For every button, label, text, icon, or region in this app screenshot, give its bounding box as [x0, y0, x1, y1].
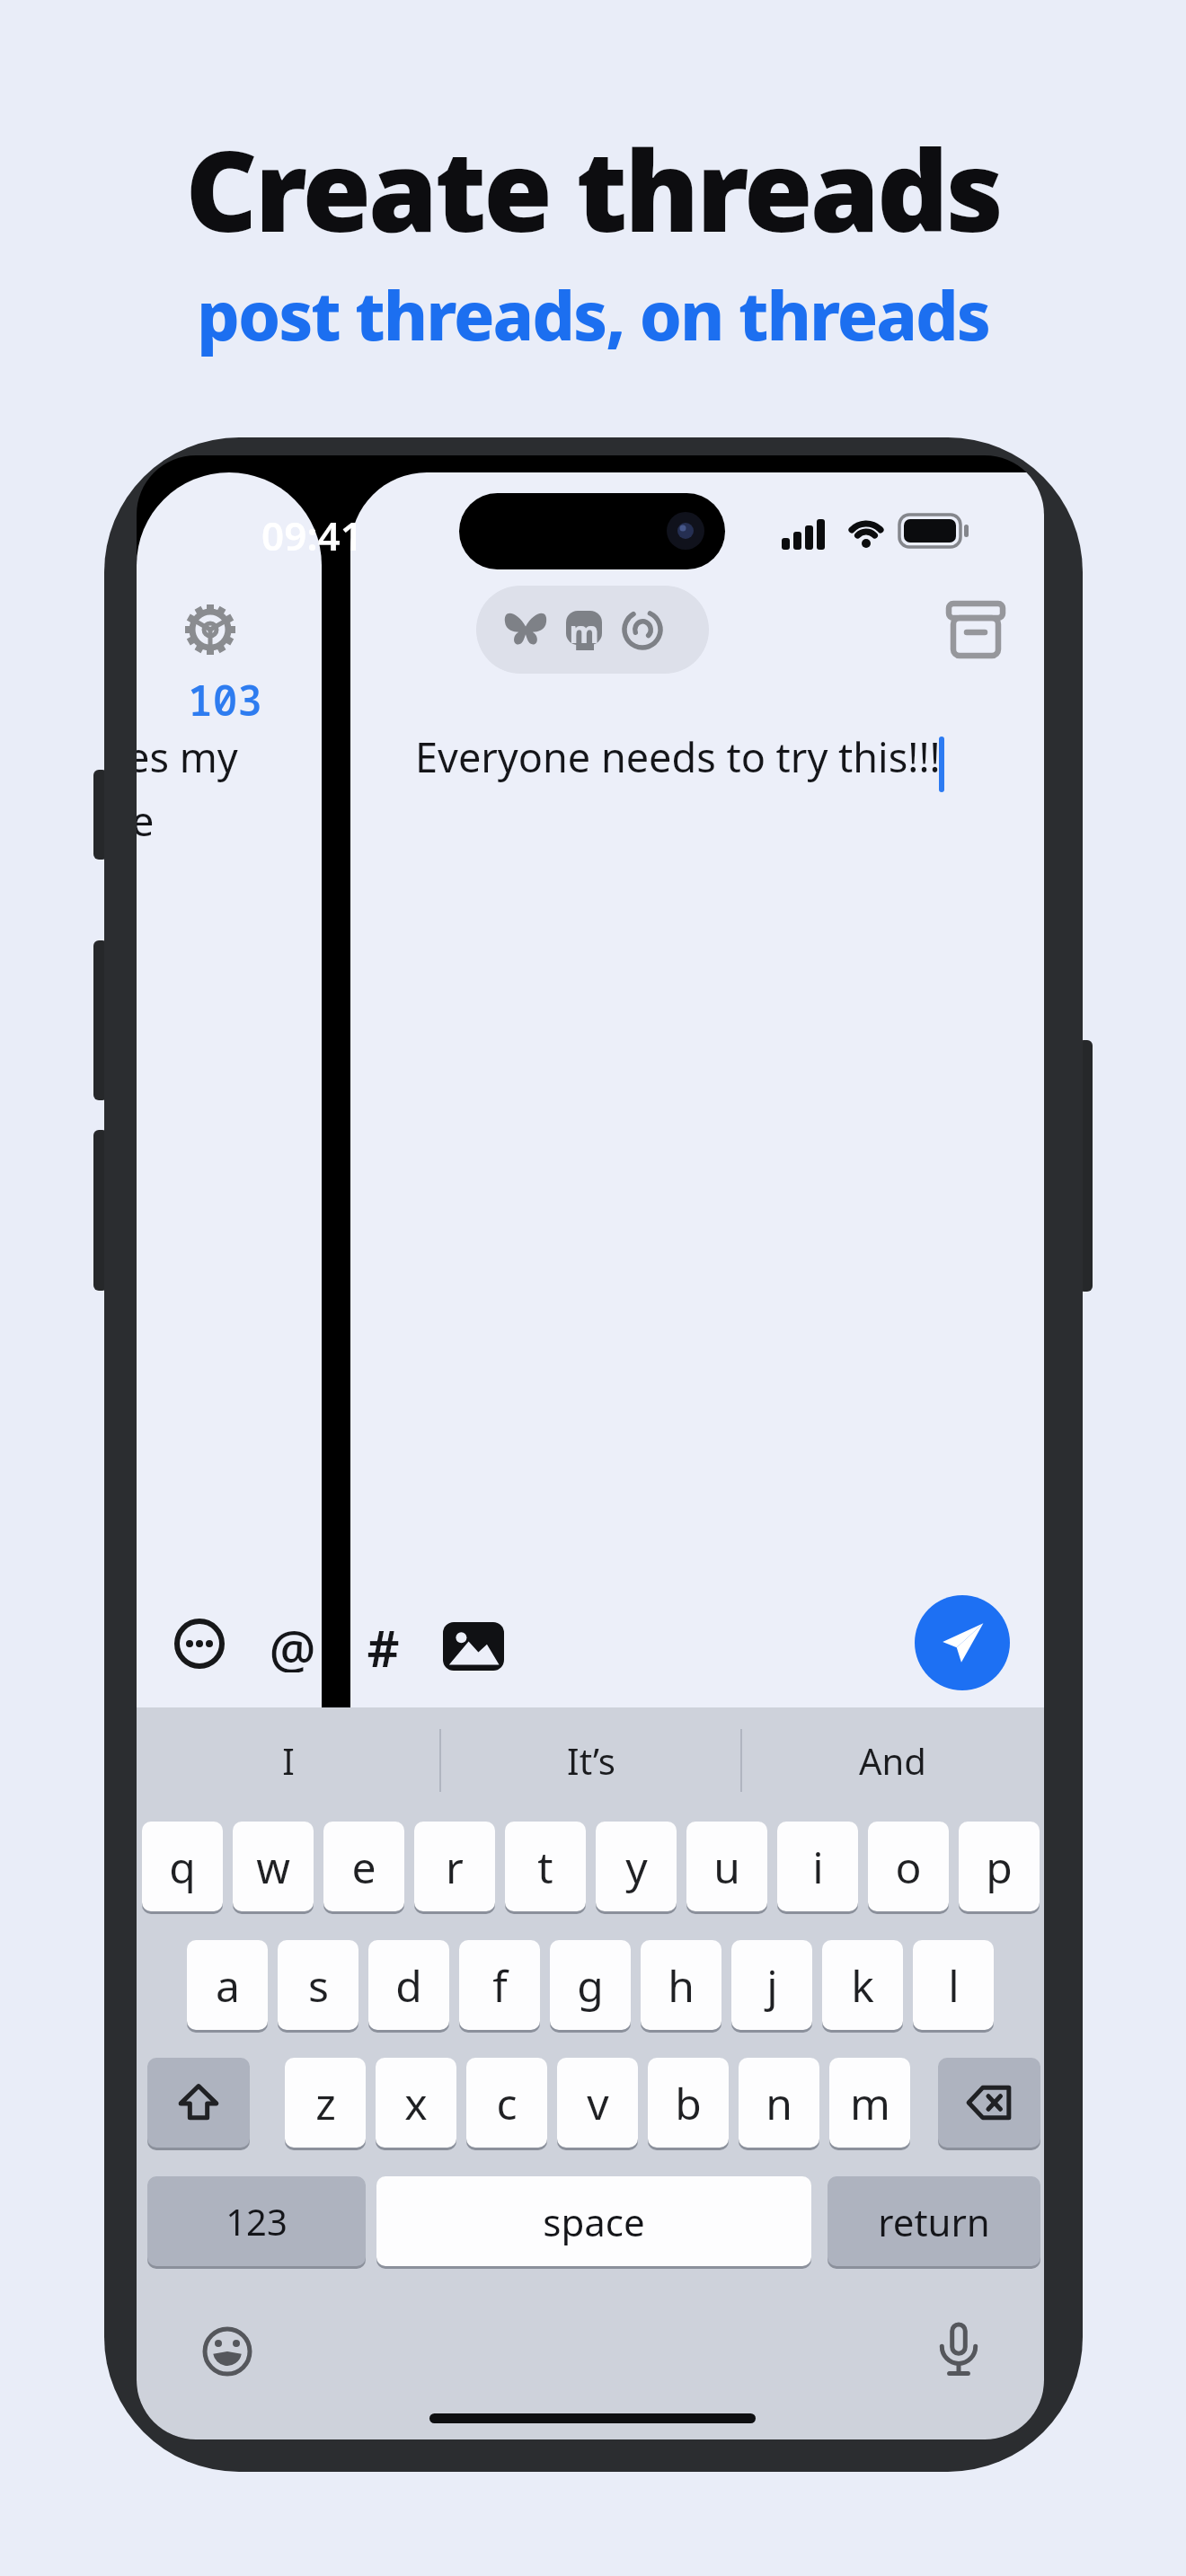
button[interactable]: It’s — [440, 1727, 741, 1794]
button[interactable]: f — [459, 1940, 540, 2030]
staticText: w — [256, 1838, 290, 1896]
staticText: q — [169, 1838, 196, 1896]
button[interactable] — [147, 2058, 250, 2148]
staticText: space — [543, 2196, 645, 2247]
button[interactable]: x — [376, 2058, 456, 2148]
button[interactable]: v — [557, 2058, 638, 2148]
staticText: r — [446, 1838, 464, 1896]
button[interactable] — [622, 609, 663, 650]
staticText: es my — [137, 729, 238, 784]
button[interactable] — [174, 1619, 225, 1669]
staticText: f — [492, 1956, 508, 2015]
button[interactable] — [938, 2058, 1040, 2148]
button[interactable]: I — [137, 1727, 440, 1794]
staticText: p — [986, 1838, 1013, 1896]
staticText: 123 — [226, 2197, 288, 2245]
button[interactable] — [935, 2325, 982, 2380]
button[interactable]: space — [376, 2176, 811, 2266]
staticText: m — [850, 2074, 890, 2132]
staticText: j — [766, 1956, 778, 2015]
button[interactable] — [443, 1622, 504, 1671]
button[interactable]: u — [686, 1822, 767, 1911]
button[interactable]: n — [739, 2058, 819, 2148]
staticText: post threads, on threads — [197, 269, 989, 358]
staticText: t — [537, 1838, 553, 1896]
button[interactable]: # — [356, 1613, 410, 1672]
button[interactable]: And — [741, 1727, 1044, 1794]
staticText: And — [859, 1736, 926, 1785]
button[interactable]: o — [868, 1822, 949, 1911]
staticText: 103 — [188, 672, 262, 720]
button[interactable]: t — [505, 1822, 586, 1911]
staticText: @ — [269, 1613, 316, 1672]
button[interactable]: g — [550, 1940, 631, 2030]
staticText: l — [948, 1956, 960, 2015]
button[interactable]: p — [959, 1822, 1040, 1911]
button[interactable]: 123 — [147, 2176, 366, 2266]
button[interactable]: k — [822, 1940, 903, 2030]
staticText: # — [367, 1613, 400, 1672]
button[interactable]: return — [828, 2176, 1040, 2266]
button[interactable]: j — [731, 1940, 812, 2030]
staticText: d — [395, 1956, 422, 2015]
staticText: y — [625, 1838, 648, 1896]
staticText: Everyone needs to try this!!! — [415, 729, 941, 784]
button[interactable] — [202, 2326, 252, 2377]
staticText: e — [351, 1838, 376, 1896]
button[interactable]: y — [596, 1822, 677, 1911]
staticText: e — [137, 793, 155, 848]
staticText: h — [668, 1956, 695, 2015]
button[interactable]: q — [142, 1822, 223, 1911]
staticText: u — [713, 1838, 740, 1896]
staticText: s — [308, 1956, 329, 2015]
button[interactable]: z — [285, 2058, 366, 2148]
button[interactable]: a — [187, 1940, 268, 2030]
button[interactable] — [915, 1595, 1010, 1690]
staticText: I — [282, 1736, 295, 1785]
button[interactable]: e — [323, 1822, 404, 1911]
button[interactable]: m — [564, 609, 604, 650]
staticText: v — [587, 2074, 609, 2132]
button[interactable]: l — [913, 1940, 994, 2030]
staticText: c — [496, 2074, 518, 2132]
staticText: z — [315, 2074, 336, 2132]
button[interactable]: c — [466, 2058, 547, 2148]
button[interactable]: i — [777, 1822, 858, 1911]
staticText: m — [569, 611, 599, 650]
button[interactable] — [504, 610, 547, 649]
staticText: It’s — [567, 1736, 615, 1785]
staticText: g — [577, 1956, 604, 2015]
staticText: Create threads — [185, 112, 1001, 234]
staticText: n — [766, 2074, 792, 2132]
staticText: return — [878, 2196, 990, 2247]
button[interactable]: d — [368, 1940, 449, 2030]
button[interactable]: s — [278, 1940, 358, 2030]
staticText: a — [216, 1956, 240, 2015]
button[interactable]: w — [233, 1822, 314, 1911]
staticText: x — [404, 2074, 428, 2132]
button[interactable]: r — [414, 1822, 495, 1911]
staticText: 09:41 — [261, 508, 363, 557]
staticText: k — [851, 1956, 874, 2015]
button[interactable] — [949, 602, 1003, 657]
staticText: o — [895, 1838, 922, 1896]
button[interactable]: @ — [262, 1613, 322, 1672]
button[interactable]: b — [648, 2058, 729, 2148]
button[interactable]: m — [829, 2058, 910, 2148]
staticText: i — [812, 1838, 824, 1896]
staticText: b — [675, 2074, 702, 2132]
button[interactable]: h — [641, 1940, 721, 2030]
